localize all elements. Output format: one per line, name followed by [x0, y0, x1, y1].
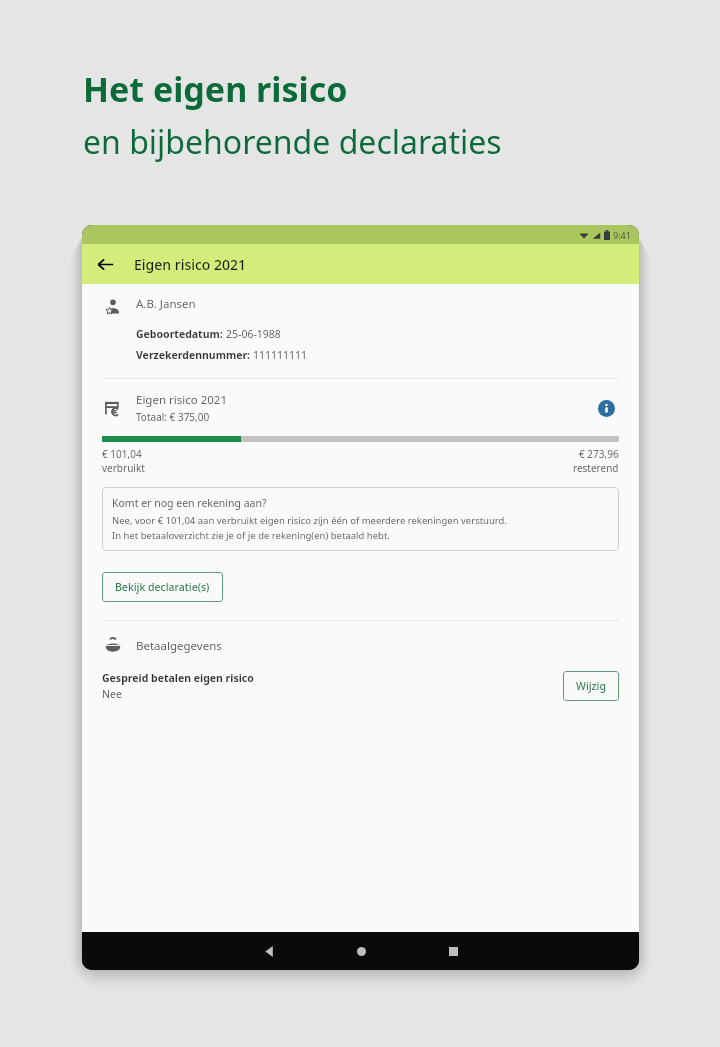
staticText: Betaalgegevens [136, 638, 222, 654]
staticText: In het betaaloverzicht zie je of je de r… [112, 529, 390, 542]
staticText: verbruikt [102, 461, 145, 475]
staticText: Nee, voor € 101,04 aan verbruikt eigen r… [112, 514, 507, 527]
staticText: Het eigen risico [83, 66, 348, 112]
button[interactable]: Home [344, 934, 378, 968]
button[interactable]: Recente apps [436, 934, 470, 968]
staticText: € 273,96 [579, 447, 619, 461]
staticText: A.B. Jansen [136, 296, 196, 312]
staticText: 111111111 [253, 348, 308, 362]
button[interactable]: Wijzig [563, 671, 619, 701]
staticText: Eigen risico 2021 [136, 392, 227, 408]
staticText: Bekijk declaratie(s) [115, 580, 210, 594]
staticText: Totaal: € 375,00 [136, 410, 210, 424]
staticText: Wijzig [576, 679, 606, 693]
staticText: € 101,04 [102, 447, 142, 461]
staticText: resterend [573, 461, 619, 475]
staticText: Komt er nog een rekening aan? [112, 496, 267, 510]
staticText: Geboortedatum: [136, 327, 226, 341]
staticText: Gespreid betalen eigen risico [102, 671, 254, 685]
staticText: en bijbehorende declaraties [83, 120, 502, 164]
staticText: Verzekerdennummer: [136, 348, 253, 362]
button[interactable]: Bekijk declaratie(s) [102, 572, 223, 602]
button[interactable]: Informatie [593, 395, 619, 421]
staticText: 25-06-1988 [226, 327, 281, 341]
staticText: Nee [102, 687, 122, 701]
button[interactable]: Terug [88, 247, 122, 281]
button[interactable]: Terug [252, 934, 286, 968]
staticText: 9:41 [613, 229, 631, 241]
staticText: Eigen risico 2021 [134, 255, 247, 274]
